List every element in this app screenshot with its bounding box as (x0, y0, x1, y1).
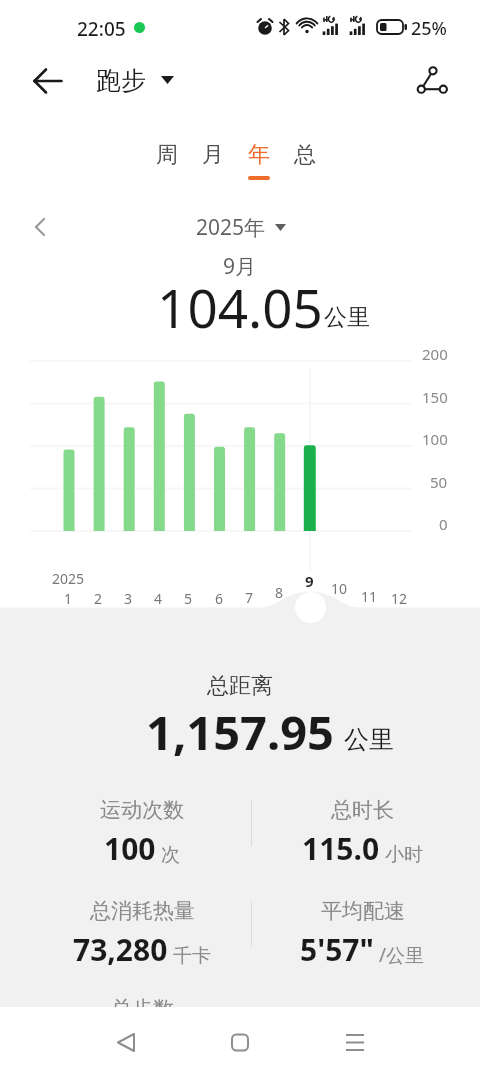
button[interactable]: 总 (282, 141, 328, 185)
staticText: 2025年 (196, 213, 266, 241)
button[interactable]: Recent apps (331, 1018, 379, 1068)
staticText: 总时长 (331, 797, 394, 823)
staticText: 2 (94, 589, 103, 608)
button[interactable]: 运动次数 (32, 797, 252, 877)
staticText: 小时 (385, 843, 423, 867)
staticText: 10 (331, 579, 348, 598)
staticText: 年 (248, 141, 270, 169)
staticText: 5'57" (300, 929, 374, 970)
staticText: 25% (411, 16, 447, 41)
staticText: 总消耗热量 (90, 898, 195, 924)
staticText: 100 (422, 429, 448, 449)
staticText: 8 (275, 583, 284, 602)
staticText: 200 (422, 344, 448, 364)
button[interactable]: Previous year (22, 209, 58, 245)
staticText: 9 (305, 571, 314, 591)
button[interactable]: Home (216, 1018, 264, 1068)
staticText: 周 (156, 141, 178, 169)
staticText: /公里 (379, 942, 425, 968)
button[interactable]: 总时长 (252, 797, 472, 877)
staticText: 公里 (344, 724, 394, 755)
button[interactable]: 总消耗热量 (32, 898, 252, 978)
staticText: 运动次数 (100, 797, 184, 823)
staticText: 3 (124, 589, 133, 608)
staticText: 9月 (223, 252, 257, 281)
staticText: 22:05 (77, 16, 126, 42)
staticText: 0 (439, 514, 448, 534)
button[interactable]: 月 (190, 141, 236, 185)
button[interactable]: 跑步 (96, 61, 174, 99)
button[interactable]: Back (25, 58, 71, 104)
staticText: 公里 (324, 303, 370, 332)
staticText: 104.05 (140, 271, 340, 343)
button[interactable]: 年 (236, 141, 282, 185)
staticText: 千卡 (173, 944, 211, 968)
staticText: 次 (161, 843, 180, 867)
staticText: 4 (154, 589, 163, 608)
button[interactable]: 周 (144, 141, 190, 185)
staticText: 7 (245, 588, 254, 607)
staticText: 月 (202, 141, 224, 169)
staticText: 总步数 (111, 996, 174, 1007)
staticText: 6 (215, 589, 224, 608)
button[interactable]: Share (405, 61, 449, 105)
staticText: 11 (361, 587, 378, 606)
staticText: 100 (104, 828, 156, 869)
staticText: 73,280 (73, 929, 168, 970)
staticText: 115.0 (302, 828, 380, 869)
staticText: 150 (422, 387, 448, 407)
staticText: 总距离 (207, 672, 273, 700)
staticText: 2025 (52, 569, 85, 588)
button[interactable]: 2025年 (196, 213, 286, 241)
staticText: 总 (294, 141, 316, 169)
button[interactable]: Back (102, 1018, 150, 1068)
staticText: 跑步 (96, 65, 146, 96)
staticText: 5 (184, 589, 193, 608)
staticText: 50 (430, 472, 448, 492)
button[interactable]: 平均配速 (252, 898, 472, 978)
staticText: 1,157.95 (125, 700, 355, 764)
staticText: 12 (391, 589, 408, 608)
staticText: 平均配速 (321, 898, 405, 924)
staticText: 1 (64, 589, 73, 608)
